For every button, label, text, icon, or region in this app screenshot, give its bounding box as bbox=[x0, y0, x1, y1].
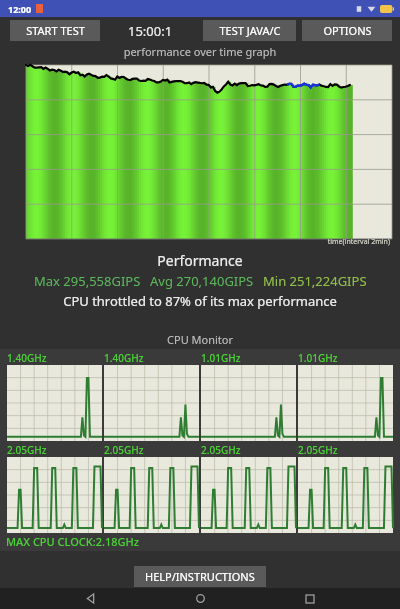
button[interactable]: Home bbox=[180, 588, 220, 609]
staticText: MAX CPU CLOCK:2.18GHz bbox=[6, 534, 140, 549]
button[interactable]: Back bbox=[70, 588, 110, 609]
button[interactable]: TEST JAVA/C bbox=[203, 20, 296, 41]
staticText: Performance bbox=[0, 251, 400, 270]
staticText: performance over time graph bbox=[0, 44, 400, 59]
staticText: OPTIONS bbox=[323, 23, 372, 38]
staticText: 1.01GHz bbox=[201, 351, 241, 365]
staticText: HELP/INSTRUCTIONS bbox=[145, 569, 255, 584]
staticText: Avg 270,140GIPS bbox=[150, 272, 254, 290]
staticText: CPU Monitor bbox=[0, 332, 400, 347]
staticText: START TEST bbox=[26, 23, 85, 38]
staticText: Max 295,558GIPS bbox=[34, 272, 141, 290]
staticText: TEST JAVA/C bbox=[219, 23, 281, 38]
button[interactable]: Recents bbox=[290, 588, 330, 609]
staticText: 12:00 bbox=[8, 3, 32, 15]
staticText: Min 251,224GIPS bbox=[263, 272, 367, 290]
staticText: 15:00:1 bbox=[128, 22, 173, 40]
staticText: time(interval 2min) bbox=[0, 237, 390, 247]
staticText: 2.05GHz bbox=[298, 443, 338, 457]
button[interactable]: OPTIONS bbox=[302, 20, 392, 41]
staticText: CPU throttled to 87% of its max performa… bbox=[0, 292, 400, 310]
staticText: 1.40GHz bbox=[7, 351, 47, 365]
staticText: 2.05GHz bbox=[7, 443, 47, 457]
staticText: 2.05GHz bbox=[104, 443, 144, 457]
staticText: 1.40GHz bbox=[104, 351, 144, 365]
staticText: 2.05GHz bbox=[201, 443, 241, 457]
staticText: 1.01GHz bbox=[298, 351, 338, 365]
button[interactable]: START TEST bbox=[10, 20, 100, 41]
button[interactable]: HELP/INSTRUCTIONS bbox=[134, 566, 266, 587]
